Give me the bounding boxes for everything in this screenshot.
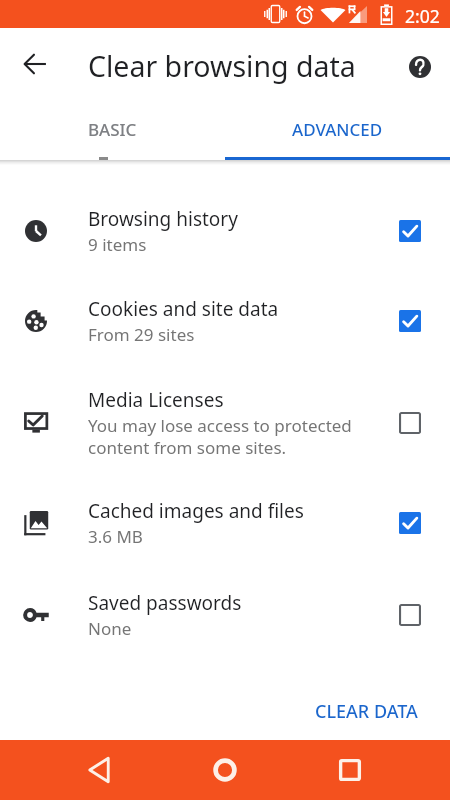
staticText: 9 items [88, 233, 147, 256]
button[interactable]: Help and feedback [396, 43, 444, 91]
button[interactable]: ADVANCED [225, 105, 450, 153]
staticText: CLEAR DATA [315, 699, 418, 724]
button[interactable]: Cookies and site data [0, 278, 450, 368]
staticText: None [88, 617, 132, 640]
button[interactable]: Cached images and files [0, 480, 450, 570]
button[interactable]: Saved passwords [0, 572, 450, 662]
staticText: Cached images and files [88, 498, 304, 524]
button[interactable]: BASIC [0, 105, 225, 153]
staticText: Cookies and site data [88, 296, 279, 322]
staticText: You may lose access to protected content… [88, 414, 352, 459]
button[interactable]: Home [195, 740, 255, 800]
staticText: ADVANCED [292, 118, 383, 141]
staticText: Clear browsing data [88, 47, 356, 86]
button[interactable]: Media Licenses [0, 369, 450, 480]
staticText: Saved passwords [88, 590, 242, 616]
button[interactable]: CLEAR DATA [300, 687, 432, 735]
staticText: 2:02 [405, 4, 440, 28]
staticText: BASIC [88, 118, 137, 141]
button[interactable]: Browsing history [0, 188, 450, 278]
button[interactable]: Back [69, 740, 129, 800]
staticText: 3.6 MB [88, 525, 143, 548]
button[interactable]: Recent apps [320, 740, 380, 800]
staticText: Browsing history [88, 206, 238, 232]
button[interactable]: Navigate up [11, 40, 59, 88]
staticText: Media Licenses [88, 387, 224, 413]
staticText: From 29 sites [88, 323, 195, 346]
